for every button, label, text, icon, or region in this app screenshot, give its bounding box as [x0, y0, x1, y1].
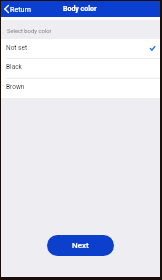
staticText: Black	[6, 63, 22, 71]
staticText: Select body color	[7, 28, 52, 35]
staticText: Not set	[6, 44, 28, 52]
button[interactable]: Next	[47, 235, 114, 256]
other: Selected	[150, 46, 155, 51]
staticText: Next	[72, 241, 89, 250]
staticText: Return	[10, 5, 31, 13]
button[interactable]: Brown	[1, 78, 160, 98]
button[interactable]: Not set	[1, 39, 160, 58]
button[interactable]: Black	[1, 58, 160, 78]
button[interactable]: Return	[1, 1, 34, 17]
staticText: Brown	[6, 83, 25, 91]
staticText: Body color	[63, 5, 97, 13]
